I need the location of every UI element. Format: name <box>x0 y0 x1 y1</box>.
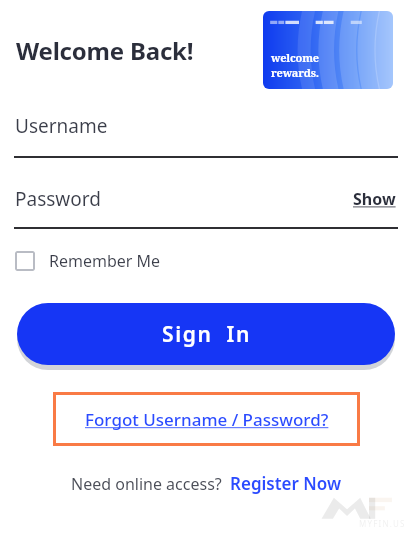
staticText: welcome <box>271 50 319 65</box>
other: Welcome Rewards card <box>263 11 393 89</box>
staticText: Sign In <box>162 320 251 349</box>
staticText: Forgot Username / Password? <box>85 408 329 431</box>
button[interactable]: Forgot Username / Password? <box>53 392 360 446</box>
staticText: Register Now <box>230 472 342 495</box>
staticText: Need online access? <box>71 473 222 495</box>
button[interactable]: Remember Me <box>15 246 161 276</box>
button[interactable]: Password <box>15 186 101 212</box>
button[interactable]: Show <box>353 188 396 210</box>
button[interactable]: Need online access? <box>71 472 342 495</box>
staticText: MYFIN.US <box>359 518 406 529</box>
staticText: rewards. <box>271 65 319 80</box>
staticText: Username <box>15 113 108 139</box>
staticText: Welcome Back! <box>16 34 194 67</box>
staticText: Show <box>353 188 396 210</box>
staticText: Remember Me <box>49 250 161 272</box>
button[interactable]: Sign In <box>17 303 395 365</box>
button[interactable]: Username <box>0 100 412 158</box>
